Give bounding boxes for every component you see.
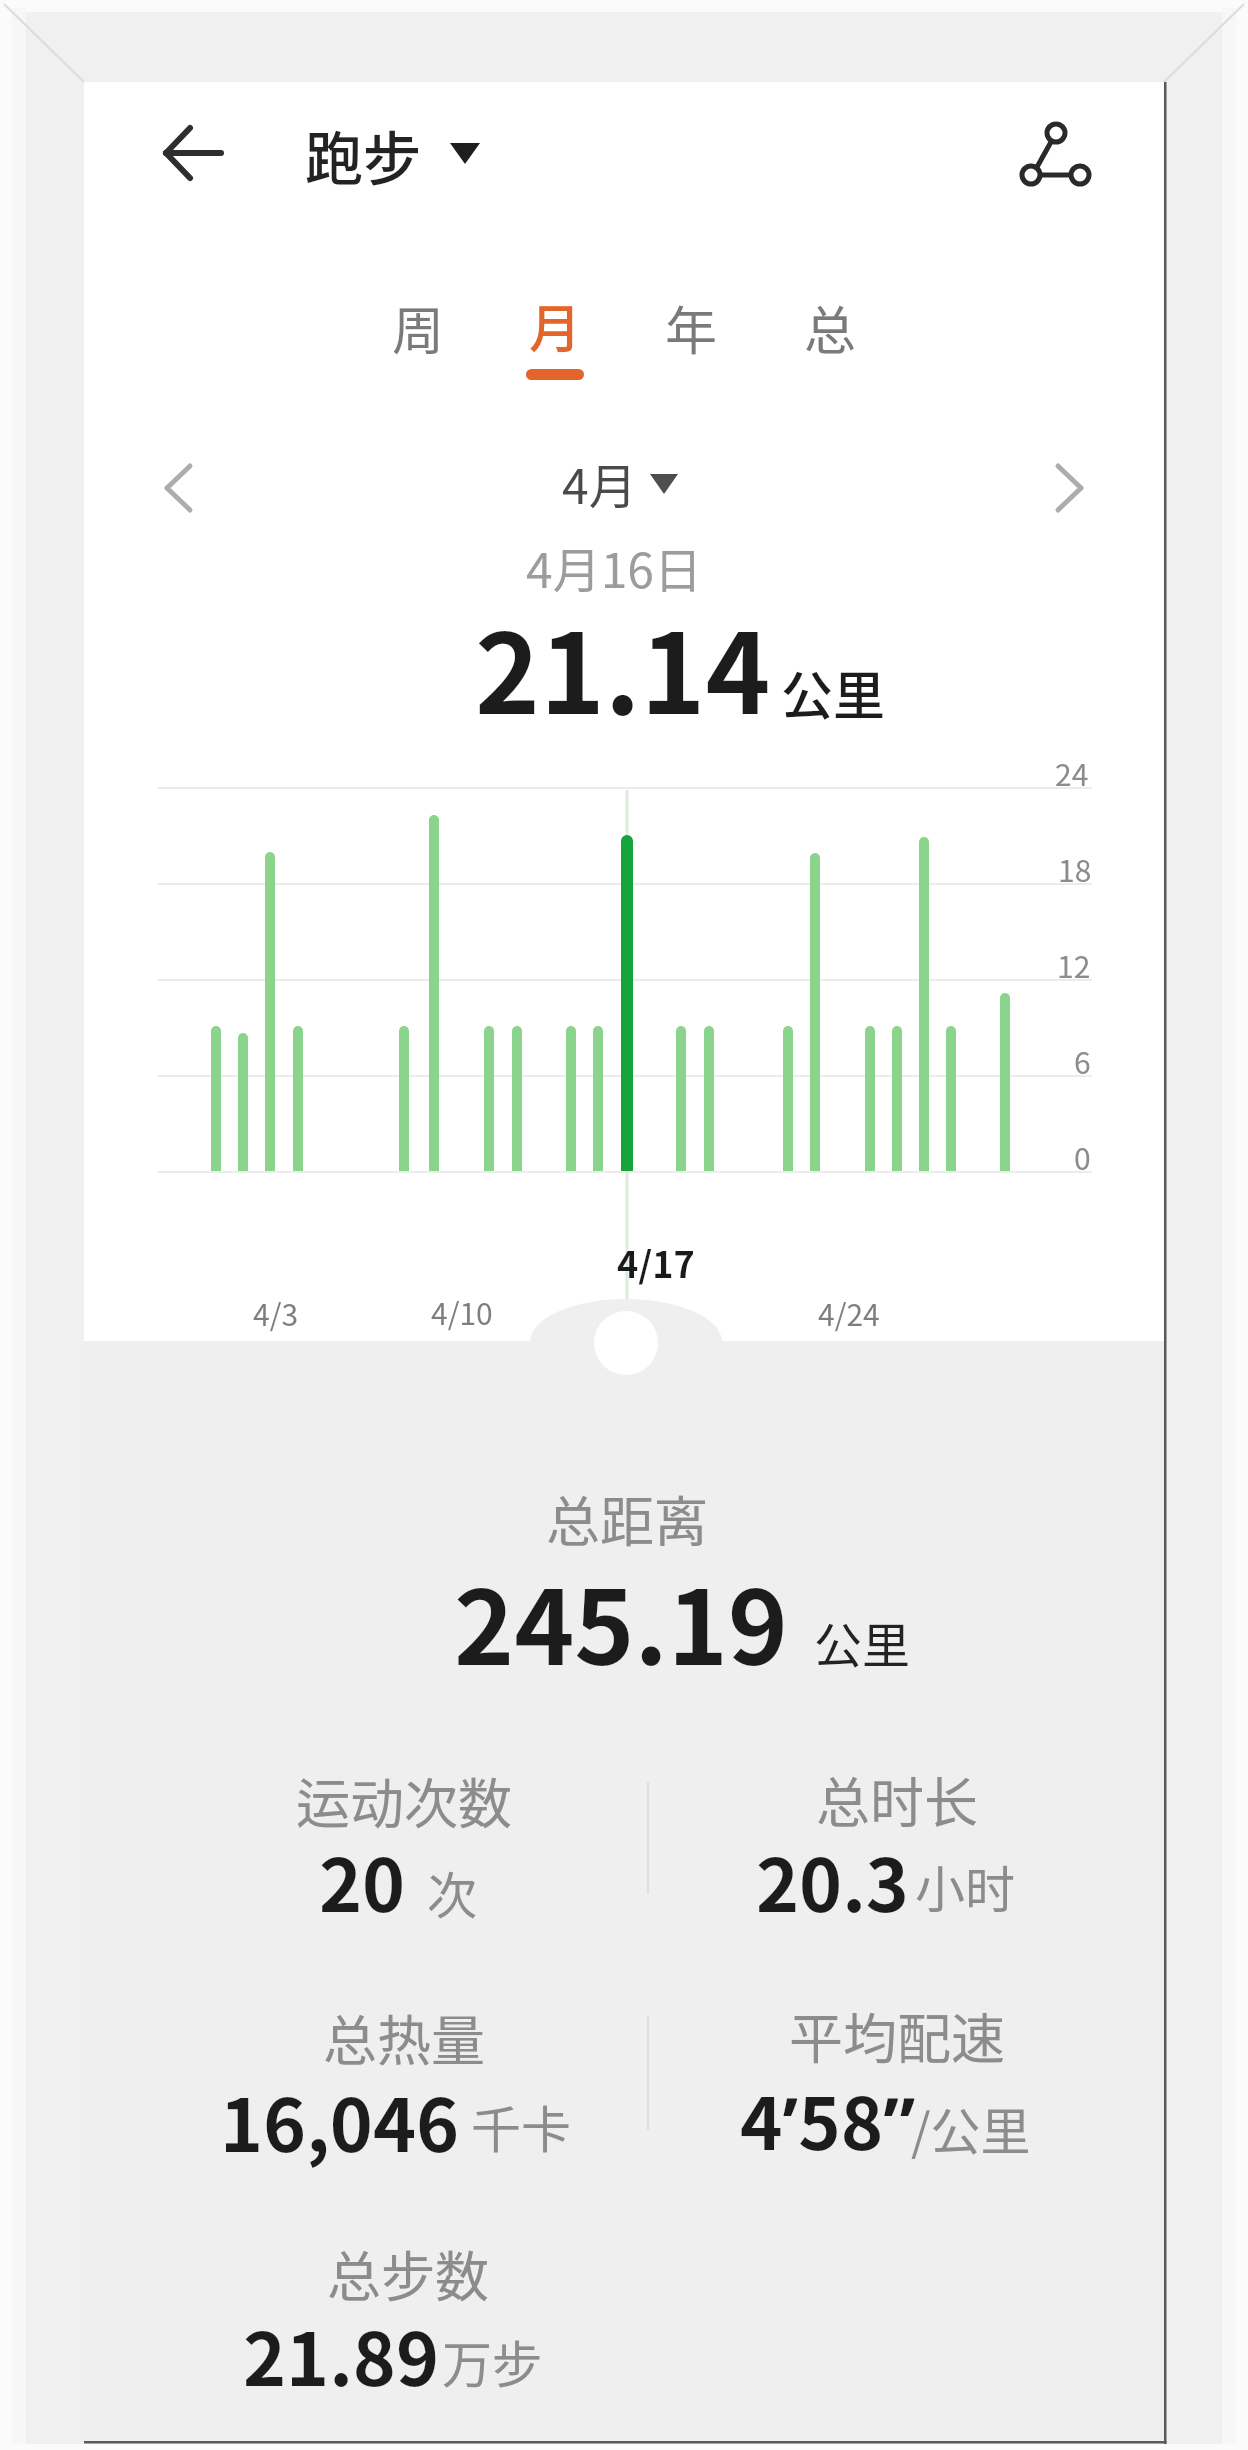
staticText: 总距离: [546, 1479, 708, 1557]
button[interactable]: 周: [363, 247, 473, 407]
staticText: 总: [804, 290, 857, 365]
button[interactable]: [140, 445, 215, 530]
staticText: 总热量: [323, 1998, 485, 2076]
staticText: 20: [319, 1827, 406, 1933]
staticText: 4/10: [431, 1290, 493, 1333]
staticText: 12: [1057, 943, 1091, 986]
staticText: 总步数: [327, 2234, 489, 2312]
staticText: 21.89: [243, 2301, 440, 2407]
staticText: 4/3: [253, 1291, 299, 1334]
staticText: 16,046: [220, 2067, 460, 2173]
button[interactable]: 月: [500, 245, 610, 405]
staticText: 跑步: [305, 113, 422, 197]
staticText: 年: [665, 290, 718, 365]
staticText: 运动次数: [296, 1761, 512, 1839]
staticText: 4月16日: [526, 532, 702, 602]
button[interactable]: 年: [636, 247, 746, 407]
staticText: 周: [392, 290, 445, 365]
staticText: 次: [427, 1856, 477, 1928]
staticText: 月: [529, 288, 582, 363]
button[interactable]: [540, 445, 700, 525]
button[interactable]: 总: [775, 247, 885, 407]
button[interactable]: [290, 115, 495, 195]
staticText: 18: [1058, 847, 1092, 890]
button[interactable]: [1005, 112, 1100, 200]
staticText: 4月: [562, 448, 637, 518]
staticText: 4ʹ58ʺ: [740, 2066, 916, 2171]
staticText: 平均配速: [789, 1996, 1005, 2074]
staticText: 0: [1074, 1135, 1091, 1178]
button[interactable]: [590, 1308, 662, 1380]
button[interactable]: [150, 118, 240, 192]
staticText: 万步: [442, 2325, 542, 2397]
staticText: 20.3: [756, 1827, 909, 1933]
staticText: 24: [1055, 751, 1089, 794]
staticText: 4/24: [818, 1291, 880, 1334]
staticText: 21.14: [475, 586, 771, 745]
staticText: 小时: [915, 1850, 1015, 1922]
button[interactable]: [1045, 445, 1110, 530]
staticText: 245.19: [454, 1547, 789, 1695]
staticText: 4/17: [617, 1236, 695, 1288]
staticText: 公里: [781, 655, 886, 730]
staticText: 千卡: [471, 2090, 571, 2162]
staticText: 公里: [814, 1607, 911, 1677]
staticText: 6: [1074, 1039, 1091, 1082]
staticText: /公里: [911, 2092, 1031, 2164]
staticText: 总时长: [816, 1760, 978, 1838]
